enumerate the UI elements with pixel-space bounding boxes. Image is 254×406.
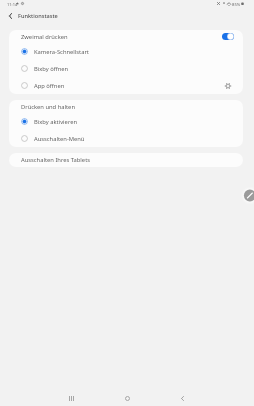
- staticText: Ausschalten-Menü: [34, 135, 85, 143]
- button[interactable]: Kamera-Schnellstart: [9, 43, 243, 60]
- button[interactable]: Ausschalten-Menü: [9, 130, 243, 147]
- button[interactable]: Edit: [240, 186, 254, 205]
- staticText: Ausschalten Ihres Tablets: [21, 156, 90, 164]
- button[interactable]: Back: [172, 388, 192, 406]
- staticText: Zweimal drücken: [21, 33, 68, 41]
- button[interactable]: Ausschalten Ihres Tablets: [9, 153, 243, 167]
- staticText: Kamera-Schnellstart: [34, 48, 89, 56]
- button[interactable]: App settings: [223, 81, 233, 91]
- button[interactable]: Back: [5, 10, 16, 21]
- staticText: Bixby öffnen: [34, 65, 69, 73]
- button[interactable]: Home: [117, 388, 137, 406]
- button[interactable]: Toggle double press: [222, 33, 234, 40]
- button[interactable]: Recent apps: [61, 388, 81, 406]
- button[interactable]: Bixby öffnen: [9, 60, 243, 77]
- staticText: 11:14: [7, 2, 18, 7]
- staticText: Bixby aktivieren: [34, 118, 78, 126]
- button[interactable]: App öffnen: [9, 77, 243, 94]
- staticText: Funktionstaste: [18, 12, 58, 20]
- staticText: Drücken und halten: [21, 103, 75, 111]
- staticText: 85%: [232, 2, 241, 8]
- staticText: App öffnen: [34, 82, 65, 90]
- button[interactable]: Bixby aktivieren: [9, 113, 243, 130]
